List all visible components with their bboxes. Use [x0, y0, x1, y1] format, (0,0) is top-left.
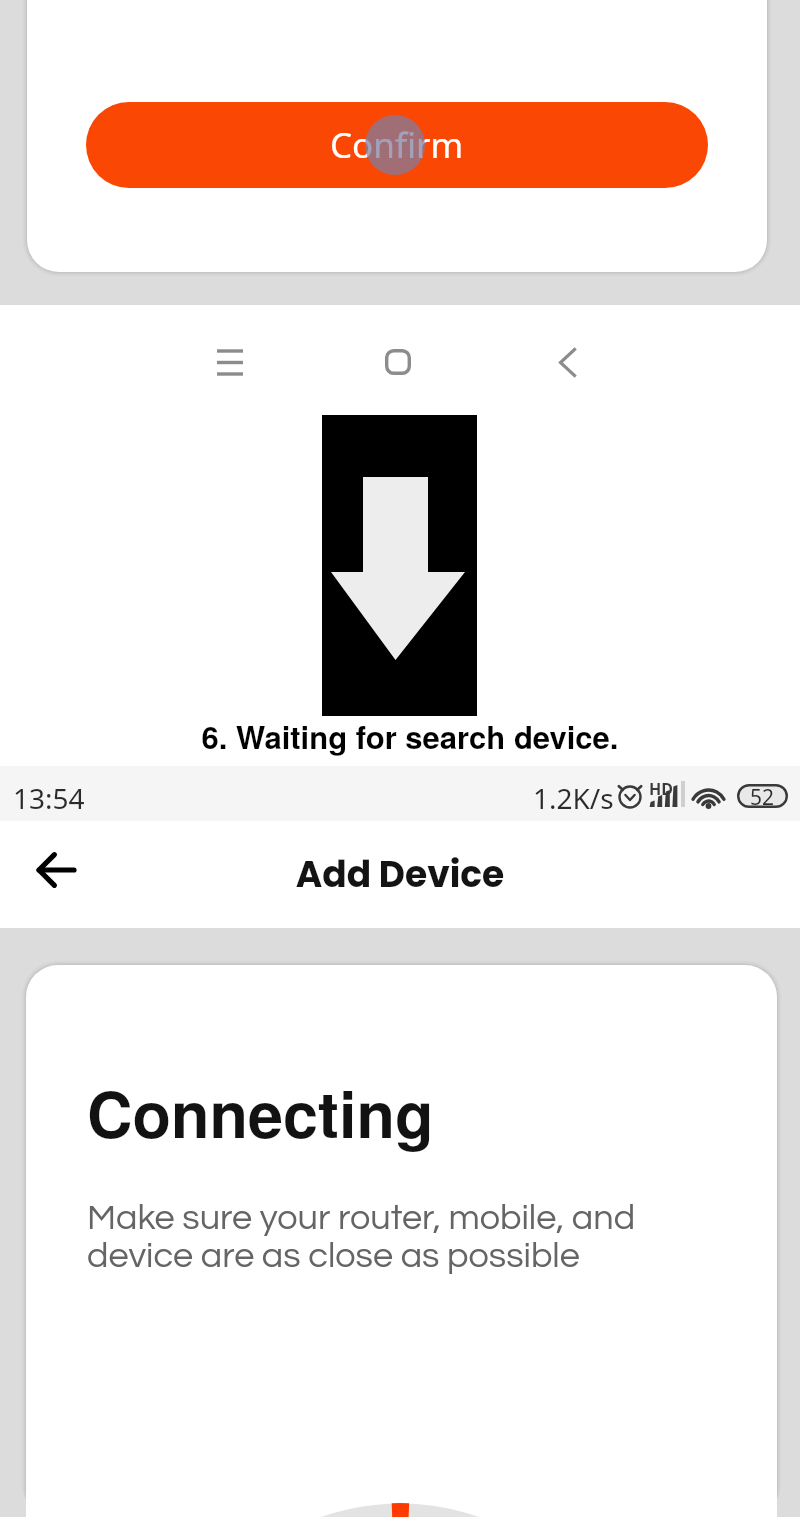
staticText: Make sure your router, mobile, and devic… — [87, 1199, 636, 1275]
staticText: 6. Waiting for search device. — [10, 714, 800, 758]
button[interactable]: Back — [22, 836, 90, 904]
staticText: Confirm — [330, 121, 464, 169]
staticText: 13:54 — [13, 779, 85, 817]
button[interactable]: Confirm — [86, 102, 708, 188]
staticText: HD — [649, 778, 673, 800]
staticText: 52 — [750, 783, 775, 807]
button[interactable]: Back — [537, 332, 597, 392]
staticText: 1.2K/s — [533, 779, 614, 817]
button[interactable]: Recent apps — [200, 332, 260, 392]
staticText: Connecting — [87, 1067, 434, 1157]
button[interactable]: Home — [368, 332, 428, 392]
staticText: Add Device — [0, 849, 800, 899]
